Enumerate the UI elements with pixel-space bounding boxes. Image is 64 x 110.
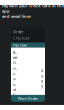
staticText: Add Discount Code (13, 50, 17, 108)
staticText: Order (13, 29, 24, 34)
staticText: Pay now (13, 42, 27, 48)
staticText: Pay with your credit card in the app (2, 3, 64, 14)
staticText: and avoid lines (2, 14, 31, 19)
staticText: Checkout (13, 35, 29, 40)
staticText: $9.99 (41, 68, 44, 89)
staticText: Place Order (17, 96, 38, 101)
